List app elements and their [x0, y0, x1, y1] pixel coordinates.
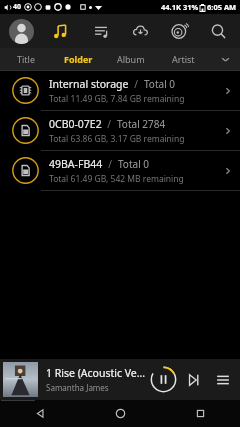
button[interactable]: More tabs	[210, 48, 240, 70]
button[interactable]: Cloud download	[127, 18, 153, 44]
staticText: 0CB0-07E2	[49, 117, 102, 131]
button[interactable]: Folder	[52, 48, 104, 70]
button[interactable]: Account	[9, 19, 34, 44]
staticText: 49BA-FB44	[49, 157, 103, 171]
staticText: Samantha James	[46, 382, 109, 393]
button[interactable]: Title	[0, 48, 52, 70]
button[interactable]: Home	[80, 400, 160, 427]
staticText: 44.1K	[161, 2, 181, 12]
button[interactable]: Next	[180, 366, 208, 394]
staticText: 31%	[183, 2, 199, 12]
staticText: Title	[17, 53, 35, 65]
button[interactable]: 0CB0-07E2	[0, 111, 240, 150]
staticText: Artist	[172, 53, 195, 65]
staticText: Total 63.86 GB, 3.17 GB remaining	[49, 133, 185, 145]
button[interactable]: Search	[205, 18, 231, 44]
staticText: /	[103, 157, 118, 171]
staticText: /	[129, 77, 144, 91]
button[interactable]: Music	[48, 18, 74, 44]
staticText: /	[102, 117, 117, 131]
staticText: 40	[13, 2, 22, 12]
staticText: Total 0	[118, 157, 150, 171]
button[interactable]: Recents	[160, 400, 240, 427]
button[interactable]: Playlist	[88, 18, 114, 44]
button[interactable]: Pause	[147, 363, 180, 396]
button[interactable]: Artist	[157, 48, 210, 70]
button[interactable]: Menu	[208, 365, 238, 395]
staticText: 1 Rise (Acoustic Version)	[46, 366, 147, 380]
staticText: Total 0	[144, 77, 176, 91]
staticText: Total 61.49 GB, 542 MB remaining	[49, 173, 184, 185]
staticText: Total 11.49 GB, 7.84 GB remaining	[49, 93, 185, 105]
staticText: Internal storage	[49, 77, 129, 91]
staticText: 6:05 AM	[207, 2, 237, 12]
staticText: Total 2784	[117, 117, 166, 131]
button[interactable]: Back	[0, 400, 80, 427]
button[interactable]: Album	[104, 48, 157, 70]
button[interactable]: 49BA-FB44	[0, 151, 240, 190]
button[interactable]: Album art	[3, 362, 38, 397]
staticText: Album	[117, 53, 145, 65]
button[interactable]: Radio	[166, 18, 192, 44]
staticText: Folder	[64, 53, 93, 65]
button[interactable]: Internal storage	[0, 71, 240, 110]
